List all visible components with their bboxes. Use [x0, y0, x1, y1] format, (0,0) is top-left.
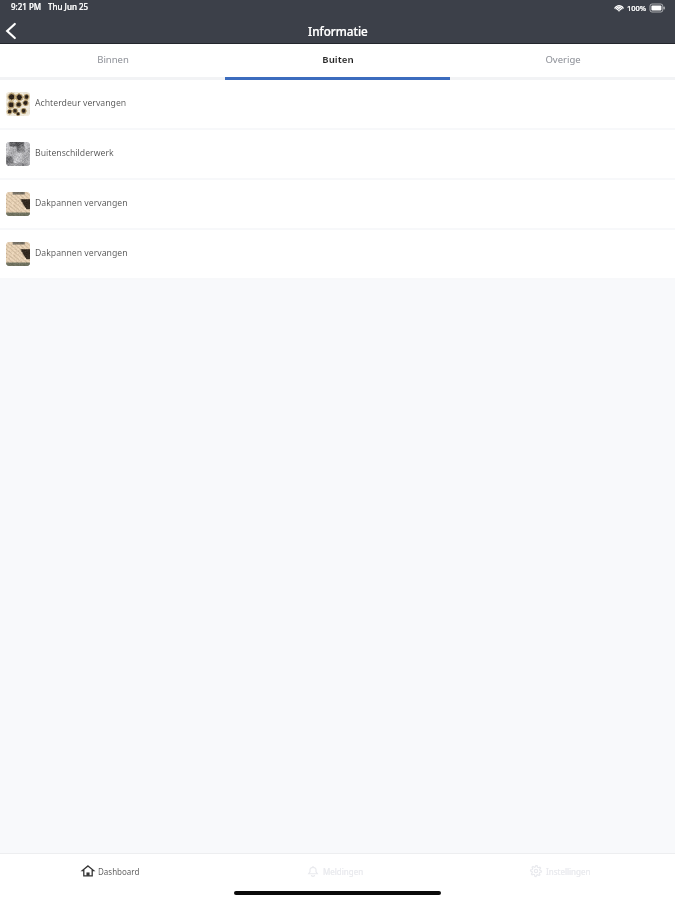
button[interactable]: Binnen: [0, 44, 225, 80]
staticText: Buiten: [322, 53, 354, 66]
staticText: 9:21 PM: [11, 1, 42, 12]
staticText: Buitenschilderwerk: [35, 147, 114, 159]
staticText: Dashboard: [98, 866, 140, 877]
staticText: Meldingen: [323, 866, 364, 877]
button[interactable]: Back: [0, 17, 21, 44]
staticText: Achterdeur vervangen: [35, 97, 127, 109]
staticText: 100%: [627, 3, 647, 13]
button[interactable]: Dakpannen vervangen: [0, 230, 675, 280]
button[interactable]: Instellingen: [450, 854, 675, 888]
button[interactable]: Dashboard: [0, 854, 225, 888]
staticText: Thu Jun 25: [48, 1, 89, 12]
staticText: Dakpannen vervangen: [35, 197, 128, 209]
button[interactable]: Achterdeur vervangen: [0, 80, 675, 130]
button[interactable]: Dakpannen vervangen: [0, 180, 675, 230]
button[interactable]: Buiten: [225, 44, 450, 80]
staticText: Informatie: [308, 23, 368, 39]
staticText: Binnen: [97, 53, 129, 66]
staticText: Overige: [545, 53, 581, 66]
button[interactable]: Overige: [450, 44, 675, 80]
button[interactable]: Buitenschilderwerk: [0, 130, 675, 180]
staticText: Instellingen: [546, 866, 591, 877]
staticText: Dakpannen vervangen: [35, 247, 128, 259]
